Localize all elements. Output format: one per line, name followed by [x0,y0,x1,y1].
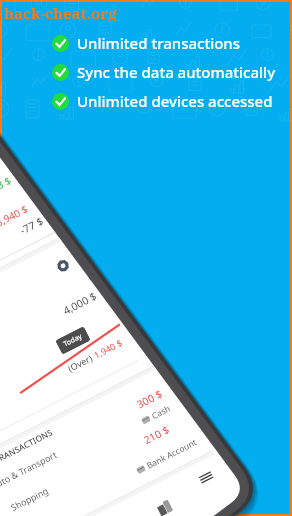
button[interactable]: Today [62,331,84,349]
button[interactable]: Settings [55,258,71,274]
staticText: Shopping [8,484,50,513]
staticText: Cash [150,402,173,422]
button[interactable]: Sync the data automatically [52,62,290,82]
button[interactable]: Unlimited transactions [52,33,290,53]
staticText: Bank Account [145,436,199,472]
staticText: 3,940 $ [2,202,30,230]
staticText: Today [62,331,84,349]
staticText: 210 $ [141,422,172,447]
staticText: Sync the data automatically [77,62,276,82]
staticText: TRANSACTIONS [2,426,55,466]
staticText: hack-cheat.org [4,3,117,23]
staticText: 1,863 $ [2,173,13,201]
staticText: 1,940 $ [91,336,124,361]
button[interactable]: Menu [197,469,215,486]
staticText: Unlimited devices accessed [77,91,273,111]
staticText: 300 $ [134,387,165,411]
staticText: (Over) [66,350,97,374]
staticText: -77 $ [18,214,46,237]
staticText: Auto & Transport [2,448,59,492]
staticText: 4,000 $ [61,289,99,318]
button[interactable]: Accounts [156,499,173,514]
button[interactable]: Unlimited devices accessed [52,91,290,111]
button[interactable]: Bank Account [135,436,199,477]
button[interactable]: Cash [140,402,173,427]
staticText: Unlimited transactions [77,33,241,53]
